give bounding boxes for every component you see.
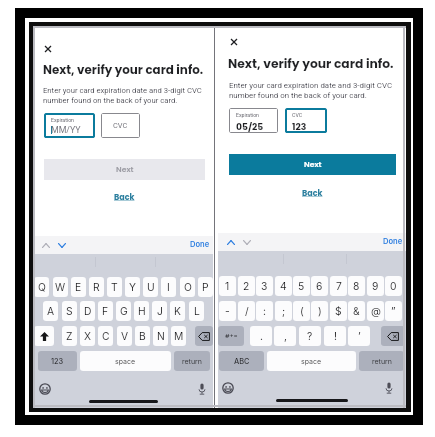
button[interactable]: Dictate	[381, 380, 397, 396]
staticText: !	[334, 330, 337, 342]
button[interactable]: Emoji keyboard	[37, 381, 53, 397]
button[interactable]: M	[171, 326, 186, 346]
button[interactable]: -	[219, 301, 236, 321]
button[interactable]: Backspace	[195, 326, 213, 346]
staticText: Next	[116, 164, 134, 175]
button[interactable]: Close	[228, 34, 240, 49]
button[interactable]: G	[116, 301, 131, 321]
button[interactable]: H	[134, 301, 149, 321]
button[interactable]: ?	[299, 326, 321, 346]
button[interactable]: return	[174, 351, 210, 371]
staticText: ,	[284, 330, 287, 342]
staticText: 123	[51, 357, 64, 366]
button[interactable]: C	[98, 326, 113, 346]
button[interactable]: I	[161, 277, 176, 297]
button[interactable]: ;	[275, 301, 292, 321]
button[interactable]: Next field	[241, 236, 253, 248]
button[interactable]: Emoji keyboard	[220, 380, 236, 396]
button[interactable]: A	[43, 301, 58, 321]
button[interactable]: R	[89, 277, 104, 297]
button[interactable]: space	[267, 351, 356, 371]
button[interactable]: 3	[256, 276, 273, 296]
button[interactable]: Previous field	[40, 239, 52, 251]
button[interactable]: @	[367, 301, 384, 321]
button[interactable]: 0	[385, 276, 402, 296]
button[interactable]: Y	[125, 277, 140, 297]
button[interactable]: 4	[275, 276, 292, 296]
staticText: 9	[372, 280, 379, 292]
button[interactable]: Previous field	[225, 236, 237, 248]
button[interactable]: Next field	[56, 239, 68, 251]
button[interactable]: ABC	[219, 351, 264, 371]
button[interactable]: space	[80, 351, 171, 371]
button[interactable]: .	[250, 326, 272, 346]
button[interactable]: CVC	[101, 113, 140, 138]
button[interactable]: ”	[385, 301, 402, 321]
staticText: C	[102, 330, 110, 342]
staticText: 6	[316, 280, 323, 292]
button[interactable]: 2	[238, 276, 255, 296]
button[interactable]: Expiration	[229, 108, 278, 133]
button[interactable]: 123	[38, 351, 77, 371]
button[interactable]: :	[256, 301, 273, 321]
button[interactable]: Close	[42, 41, 54, 56]
button[interactable]: E	[71, 277, 86, 297]
button[interactable]: K	[170, 301, 185, 321]
button[interactable]: !	[324, 326, 346, 346]
button[interactable]: Q	[34, 277, 49, 297]
button[interactable]: 8	[348, 276, 365, 296]
button[interactable]: T	[107, 277, 122, 297]
button[interactable]: 6	[311, 276, 328, 296]
button[interactable]: 1	[219, 276, 236, 296]
button[interactable]: &	[348, 301, 365, 321]
staticText: space	[115, 357, 136, 365]
button[interactable]: B	[135, 326, 150, 346]
button[interactable]: Done	[382, 236, 404, 247]
button[interactable]: ’	[348, 326, 370, 346]
staticText: (	[300, 305, 304, 317]
button[interactable]: S	[62, 301, 77, 321]
button[interactable]: (	[293, 301, 310, 321]
staticText: ABC	[234, 357, 250, 366]
button[interactable]: P	[198, 277, 213, 297]
button[interactable]: Next	[44, 159, 205, 180]
staticText: -	[225, 305, 230, 317]
button[interactable]: CVC	[285, 108, 327, 133]
staticText: Expiration	[236, 112, 259, 118]
button[interactable]: 9	[367, 276, 384, 296]
button[interactable]: O	[180, 277, 195, 297]
staticText: CVC	[113, 121, 128, 130]
button[interactable]: V	[117, 326, 132, 346]
staticText: 05/25	[236, 120, 264, 133]
button[interactable]: Backspace	[381, 326, 405, 346]
button[interactable]: $	[330, 301, 347, 321]
button[interactable]: ,	[274, 326, 296, 346]
button[interactable]: return	[359, 351, 404, 371]
staticText: Done	[383, 237, 403, 246]
button[interactable]: W	[53, 277, 68, 297]
button[interactable]: J	[152, 301, 167, 321]
staticText: Q	[38, 281, 46, 293]
staticText: MM/YY	[51, 125, 81, 135]
button[interactable]: /	[238, 301, 255, 321]
button[interactable]: U	[143, 277, 158, 297]
button[interactable]: Back	[114, 192, 135, 203]
button[interactable]: F	[98, 301, 113, 321]
button[interactable]: D	[80, 301, 95, 321]
button[interactable]: X	[80, 326, 95, 346]
button[interactable]: 7	[330, 276, 347, 296]
staticText: Next, verify your card info.	[228, 55, 394, 72]
button[interactable]: N	[153, 326, 168, 346]
button[interactable]: 5	[293, 276, 310, 296]
button[interactable]: Z	[62, 326, 77, 346]
button[interactable]: Symbols	[218, 326, 244, 346]
button[interactable]: Dictate	[194, 381, 210, 397]
button[interactable]: Shift	[34, 326, 54, 346]
button[interactable]: L	[189, 301, 204, 321]
button[interactable]: )	[311, 301, 328, 321]
button[interactable]: Next	[229, 154, 396, 175]
staticText: 4	[280, 280, 287, 292]
button[interactable]: Back	[302, 188, 323, 199]
button[interactable]: Done	[189, 239, 211, 250]
button[interactable]: Expiration	[44, 113, 95, 138]
